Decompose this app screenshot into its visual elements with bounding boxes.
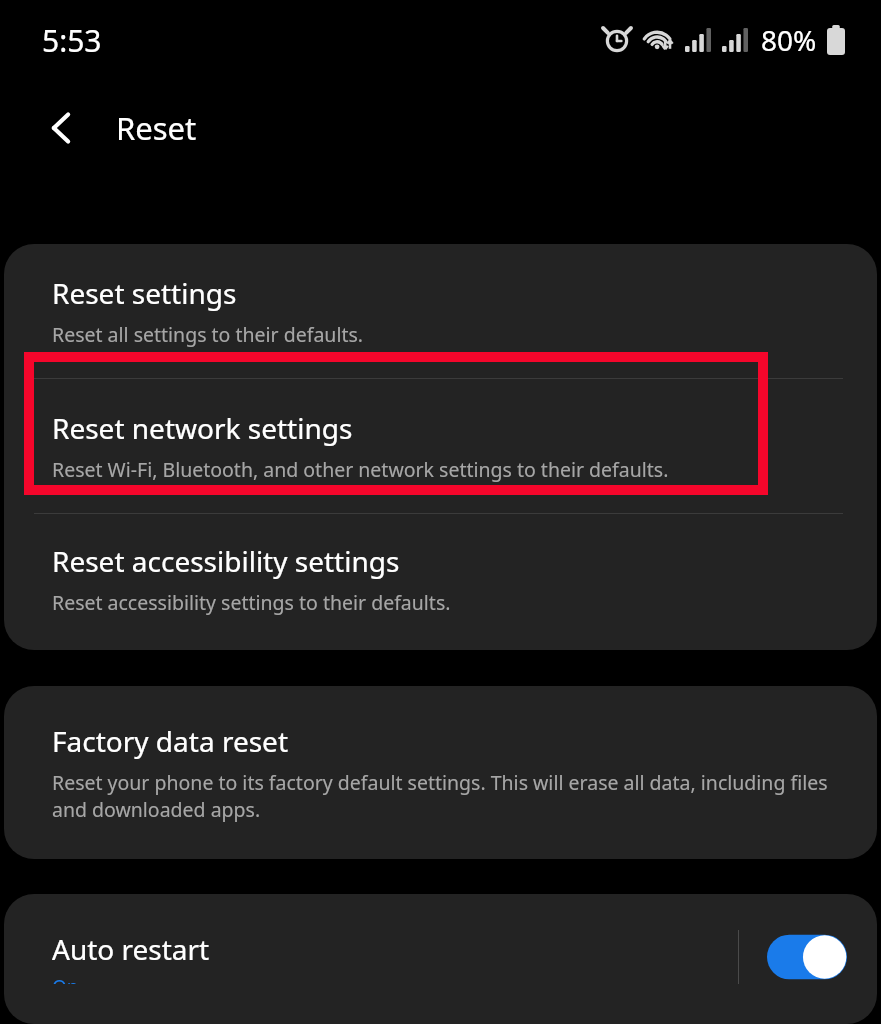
staticText: Reset xyxy=(116,107,197,149)
staticText: Reset your phone to its factory default … xyxy=(52,769,837,823)
staticText: Reset Wi-Fi, Bluetooth, and other networ… xyxy=(52,456,669,483)
staticText: Reset network settings xyxy=(52,409,353,447)
staticText: Reset all settings to their defaults. xyxy=(52,321,364,348)
staticText: 5:53 xyxy=(42,20,102,61)
staticText: Reset accessibility settings to their de… xyxy=(52,589,451,616)
button[interactable]: Reset network settings xyxy=(4,379,877,513)
staticText: Auto restart xyxy=(52,930,210,968)
button[interactable]: Reset settings xyxy=(4,244,877,378)
staticText: Reset settings xyxy=(52,274,237,312)
staticText: 80% xyxy=(761,21,817,59)
staticText: Factory data reset xyxy=(52,722,288,760)
button[interactable]: Back xyxy=(30,96,94,160)
staticText: On xyxy=(52,974,79,984)
button[interactable]: Auto restart xyxy=(4,894,877,1024)
staticText: Reset accessibility settings xyxy=(52,542,400,580)
button[interactable]: Auto restart toggle xyxy=(767,931,847,983)
button[interactable]: Factory data reset xyxy=(4,686,877,859)
button[interactable]: Reset accessibility settings xyxy=(4,514,877,650)
